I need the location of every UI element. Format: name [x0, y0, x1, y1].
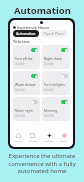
button[interactable]: Experience House [10, 24, 73, 31]
staticText: Subtitle [44, 114, 55, 118]
staticText: Turn on lights 80% [44, 83, 68, 87]
button[interactable]: Toggle [42, 45, 70, 69]
staticText: Experience the ultimate convenience with… [2, 152, 82, 174]
staticText: Turn off the ligh... [15, 57, 38, 61]
staticText: Title text [13, 39, 30, 44]
staticText: Subtitle [44, 88, 55, 92]
staticText: Morning routine [44, 109, 68, 113]
button[interactable]: Home [14, 128, 23, 147]
staticText: Night check [44, 57, 62, 61]
button[interactable]: Toggle [42, 97, 70, 121]
button[interactable]: Automation [13, 30, 39, 37]
button[interactable]: Toggle [31, 100, 38, 104]
staticText: Devices [28, 139, 37, 142]
button[interactable]: Toggle [61, 100, 68, 104]
staticText: Experience House [17, 25, 50, 30]
button[interactable]: Toggle [31, 48, 38, 52]
button[interactable]: Tips & Plans [41, 30, 67, 37]
button[interactable]: Toggle [31, 74, 38, 78]
staticText: Home [15, 139, 22, 142]
button[interactable]: Toggle [61, 74, 68, 78]
button[interactable]: Profile [59, 128, 69, 147]
staticText: Subtitle [15, 88, 26, 92]
staticText: Subtitle [44, 62, 55, 66]
button[interactable]: Devices [27, 128, 38, 147]
staticText: Automation [16, 31, 36, 36]
button[interactable]: Toggle [13, 97, 40, 121]
staticText: Profile [60, 139, 68, 142]
staticText: Warm shower [15, 83, 36, 87]
staticText: Subtitle [15, 114, 26, 118]
staticText: Automation [14, 4, 71, 17]
button[interactable]: Routines [43, 128, 55, 147]
button[interactable]: Toggle [42, 71, 70, 95]
button[interactable]: Toggle [13, 45, 40, 69]
staticText: Subtitle [15, 62, 26, 66]
button[interactable]: Toggle [13, 71, 40, 95]
button[interactable]: Toggle [61, 48, 68, 52]
staticText: Routines [44, 139, 54, 142]
staticText: Tips & Plans [44, 31, 64, 36]
staticText: Movie night [15, 109, 33, 113]
